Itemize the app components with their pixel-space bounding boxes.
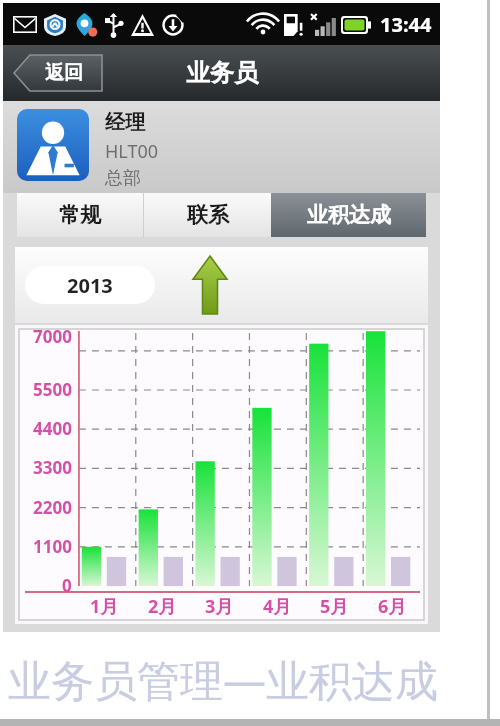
button[interactable]: 返回 [14, 55, 102, 91]
staticText: 5500 [33, 378, 72, 401]
staticText: 返回 [45, 61, 83, 85]
button[interactable]: 7000 [15, 325, 428, 624]
staticText: 总部 [105, 167, 141, 190]
button[interactable]: 常规 [17, 193, 143, 237]
staticText: 0 [62, 574, 72, 597]
staticText: 13:44 [380, 11, 432, 38]
button[interactable]: 2013 [25, 266, 155, 304]
staticText: 3300 [33, 456, 72, 479]
staticText: 4400 [33, 417, 72, 440]
staticText: 1100 [33, 535, 72, 558]
other: Up [193, 256, 227, 314]
button[interactable]: 业积达成 [271, 193, 426, 237]
staticText: 5月 [320, 594, 349, 619]
staticText: 经理 [105, 110, 145, 135]
staticText: 业务员管理—业积达成 [8, 650, 438, 709]
staticText: 1月 [90, 594, 119, 619]
staticText: 常规 [59, 202, 101, 228]
button[interactable]: 经理 [3, 101, 440, 193]
button[interactable]: 联系 [144, 193, 271, 237]
staticText: 3月 [205, 594, 234, 619]
staticText: 业积达成 [307, 202, 391, 228]
staticText: HLT00 [105, 139, 159, 164]
staticText: 7000 [33, 325, 72, 348]
staticText: 2013 [67, 272, 113, 299]
staticText: 6月 [378, 594, 407, 619]
staticText: 2200 [33, 496, 72, 519]
staticText: 4月 [263, 594, 292, 619]
staticText: 业务员 [186, 58, 258, 88]
staticText: 2月 [148, 594, 177, 619]
staticText: 联系 [187, 202, 229, 228]
